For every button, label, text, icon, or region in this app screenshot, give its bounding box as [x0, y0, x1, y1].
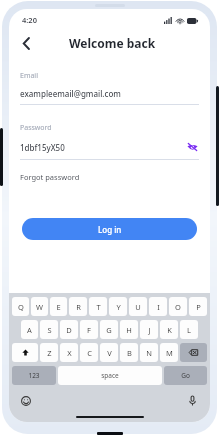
staticText: N	[146, 348, 152, 358]
button[interactable]: W	[31, 297, 48, 316]
staticText: R	[76, 302, 81, 312]
staticText: Y	[116, 302, 121, 312]
button[interactable]: P	[189, 297, 207, 316]
staticText: space	[101, 371, 119, 380]
button[interactable]: Back	[17, 34, 35, 52]
button[interactable]: N	[140, 343, 158, 362]
staticText: P	[196, 302, 201, 312]
staticText: F	[87, 325, 91, 335]
staticText: 1dbf15yX50	[20, 142, 185, 153]
staticText: J	[148, 325, 151, 335]
button[interactable]: Shift	[12, 343, 38, 362]
button[interactable]: H	[120, 320, 138, 339]
button[interactable]: 123	[12, 366, 56, 385]
staticText: W	[36, 302, 43, 312]
staticText: Welcome back	[69, 35, 156, 51]
staticText: B	[127, 348, 132, 358]
button[interactable]: S	[40, 320, 58, 339]
staticText: 123	[28, 371, 40, 380]
staticText: L	[187, 325, 191, 335]
button[interactable]: Q	[12, 297, 29, 316]
button[interactable]: Log in	[22, 218, 197, 240]
button[interactable]: B	[120, 343, 138, 362]
staticText: E	[56, 302, 61, 312]
button[interactable]: M	[160, 343, 178, 362]
button[interactable]: L	[180, 320, 198, 339]
button[interactable]: C	[80, 343, 98, 362]
staticText: U	[135, 302, 141, 312]
button[interactable]: X	[60, 343, 78, 362]
button[interactable]: O	[169, 297, 187, 316]
staticText: V	[107, 348, 112, 358]
button[interactable]: G	[100, 320, 118, 339]
staticText: M	[166, 348, 173, 358]
button[interactable]: V	[100, 343, 118, 362]
staticText: K	[167, 325, 172, 335]
button[interactable]: A	[21, 320, 38, 339]
staticText: S	[47, 325, 52, 335]
staticText: Z	[47, 348, 52, 358]
staticText: exampleemail@gmail.com	[20, 88, 199, 99]
button[interactable]: Forgot password	[20, 172, 80, 182]
staticText: Forgot password	[20, 172, 80, 182]
button[interactable]: space	[58, 366, 162, 385]
staticText: C	[87, 348, 92, 358]
staticText: Log in	[98, 224, 122, 235]
button[interactable]: Go	[164, 366, 207, 385]
staticText: Go	[181, 371, 190, 380]
button[interactable]: Voice input	[186, 394, 199, 407]
button[interactable]: K	[160, 320, 178, 339]
staticText: Password	[20, 123, 52, 133]
button[interactable]: U	[129, 297, 147, 316]
button[interactable]: F	[80, 320, 98, 339]
button[interactable]: I	[149, 297, 167, 316]
staticText: Email	[20, 71, 38, 81]
button[interactable]: T	[89, 297, 107, 316]
button[interactable]: Backspace	[180, 343, 207, 362]
staticText: T	[96, 302, 101, 312]
staticText: Q	[18, 302, 24, 312]
button[interactable]: Toggle password visibility	[185, 140, 199, 154]
staticText: X	[67, 348, 72, 358]
button[interactable]: D	[60, 320, 78, 339]
button[interactable]: Emoji keyboard	[19, 394, 32, 407]
button[interactable]: Y	[109, 297, 127, 316]
button[interactable]: J	[140, 320, 158, 339]
staticText: G	[106, 325, 112, 335]
button[interactable]: E	[50, 297, 67, 316]
button[interactable]: Z	[40, 343, 58, 362]
staticText: O	[175, 302, 181, 312]
button[interactable]: R	[69, 297, 87, 316]
staticText: 4:20	[22, 15, 37, 25]
staticText: H	[126, 325, 132, 335]
staticText: I	[157, 302, 160, 312]
staticText: D	[66, 325, 72, 335]
staticText: A	[27, 325, 32, 335]
